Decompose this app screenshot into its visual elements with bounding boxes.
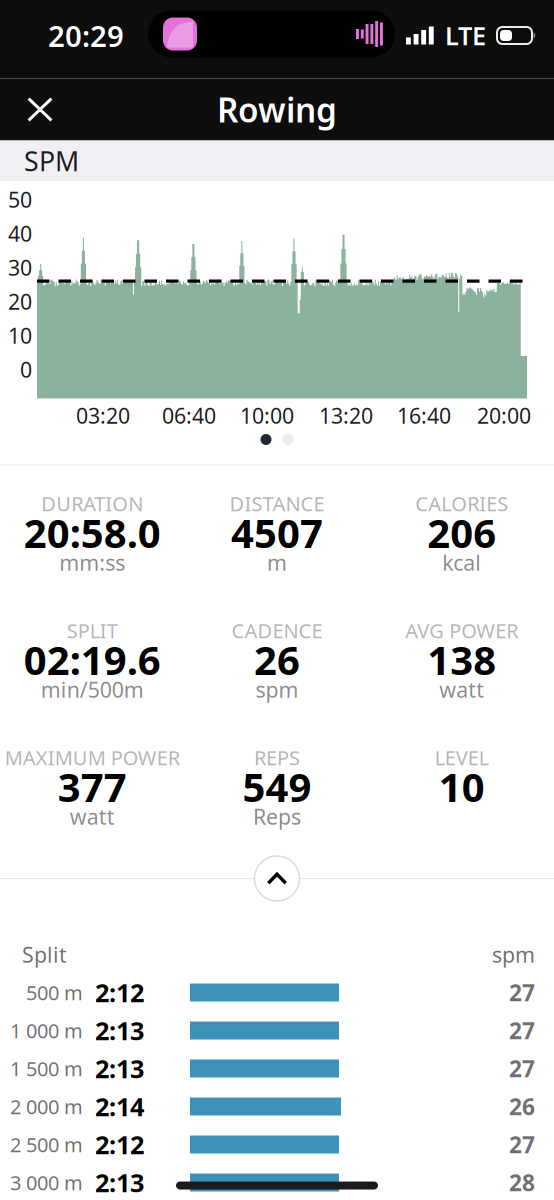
staticText: 2:13 — [95, 1052, 144, 1085]
staticText: Reps — [253, 802, 301, 831]
staticText: 2 000 m — [10, 1093, 83, 1120]
staticText: 1 500 m — [10, 1055, 83, 1082]
staticText: 20:58.0 — [24, 506, 161, 559]
staticText: 27 — [509, 1053, 535, 1083]
staticText: mm:ss — [59, 548, 125, 577]
staticText: 10 — [439, 760, 485, 813]
staticText: 377 — [58, 760, 127, 813]
staticText: 16:40 — [397, 401, 451, 430]
staticText: 549 — [242, 760, 311, 813]
staticText: 138 — [427, 633, 496, 686]
staticText: SPLIT — [67, 617, 118, 644]
staticText: kcal — [442, 548, 481, 577]
staticText: 10 — [8, 321, 32, 350]
staticText: 2:14 — [95, 1090, 144, 1123]
staticText: 40 — [8, 219, 32, 248]
staticText: 2:12 — [95, 976, 144, 1009]
button[interactable]: Close — [13, 82, 67, 136]
staticText: 50 — [8, 185, 32, 214]
staticText: 0 — [20, 355, 32, 384]
staticText: 30 — [8, 253, 32, 282]
staticText: 2:12 — [95, 1128, 144, 1161]
staticText: MAXIMUM POWER — [5, 744, 180, 771]
button[interactable]: Collapse — [254, 856, 299, 901]
staticText: watt — [439, 675, 484, 704]
staticText: 2:13 — [95, 1166, 144, 1199]
staticText: DISTANCE — [229, 490, 324, 517]
staticText: 206 — [427, 506, 496, 559]
staticText: 27 — [509, 1015, 535, 1045]
staticText: 10:00 — [240, 401, 294, 430]
staticText: m — [267, 548, 287, 577]
staticText: 20 — [8, 287, 32, 316]
staticText: 4507 — [231, 506, 323, 559]
staticText: 13:20 — [319, 401, 373, 430]
staticText: 03:20 — [76, 401, 130, 430]
staticText: 27 — [509, 977, 535, 1007]
staticText: Split — [22, 940, 67, 969]
staticText: 1 000 m — [10, 1017, 83, 1044]
staticText: 2:13 — [95, 1014, 144, 1047]
staticText: SPM — [24, 143, 79, 179]
staticText: 26 — [509, 1091, 535, 1121]
staticText: 500 m — [26, 979, 83, 1006]
staticText: Rowing — [217, 87, 337, 132]
staticText: 20:00 — [477, 401, 531, 430]
staticText: CADENCE — [231, 617, 322, 644]
staticText: 28 — [509, 1167, 535, 1197]
staticText: AVG POWER — [405, 617, 518, 644]
staticText: min/500m — [41, 675, 144, 704]
staticText: 06:40 — [162, 401, 216, 430]
staticText: 3 000 m — [10, 1169, 83, 1196]
staticText: 27 — [509, 1129, 535, 1159]
staticText: REPS — [254, 744, 300, 771]
staticText: watt — [70, 802, 115, 831]
staticText: 26 — [254, 633, 300, 686]
staticText: spm — [492, 940, 535, 969]
staticText: LEVEL — [435, 744, 489, 771]
staticText: 02:19.6 — [24, 633, 161, 686]
staticText: 20:29 — [48, 16, 124, 55]
staticText: CALORIES — [415, 490, 508, 517]
staticText: LTE — [445, 19, 486, 52]
staticText: DURATION — [41, 490, 143, 517]
staticText: spm — [255, 675, 298, 704]
staticText: 2 500 m — [10, 1131, 83, 1158]
